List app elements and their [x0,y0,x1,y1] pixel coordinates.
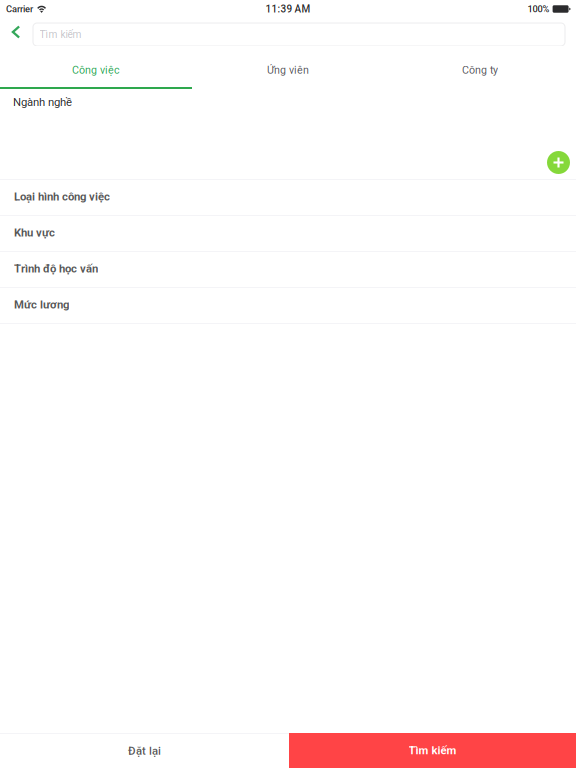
staticText: Đặt lại [128,744,161,758]
staticText: Tìm kiếm [408,744,456,757]
button[interactable]: Công ty [384,46,576,89]
staticText: Loại hình công việc [14,190,110,203]
staticText: Công việc [72,64,120,76]
staticText: Ứng viên [267,64,309,76]
button[interactable]: Trình độ học vấn [0,252,576,288]
button[interactable]: Ứng viên [192,46,384,89]
staticText: Khu vực [14,226,55,239]
staticText: Ngành nghề [13,95,72,109]
staticText: 11:39 AM [265,3,310,15]
button[interactable]: Back [0,18,32,46]
button[interactable]: Công việc [0,46,192,89]
staticText: Công ty [462,64,498,76]
button[interactable]: Loại hình công việc [0,180,576,216]
button[interactable]: Add industry [547,151,570,174]
button[interactable]: Khu vực [0,216,576,252]
staticText: Trình độ học vấn [14,262,98,275]
button[interactable]: Đặt lại [0,733,289,768]
staticText: 100% [528,3,550,14]
button[interactable]: Tìm kiếm [33,23,565,46]
button[interactable]: Mức lương [0,288,576,324]
button[interactable]: Tìm kiếm [289,733,576,768]
staticText: Carrier [6,3,33,14]
staticText: Tìm kiếm [39,29,81,40]
staticText: Mức lương [14,298,69,311]
